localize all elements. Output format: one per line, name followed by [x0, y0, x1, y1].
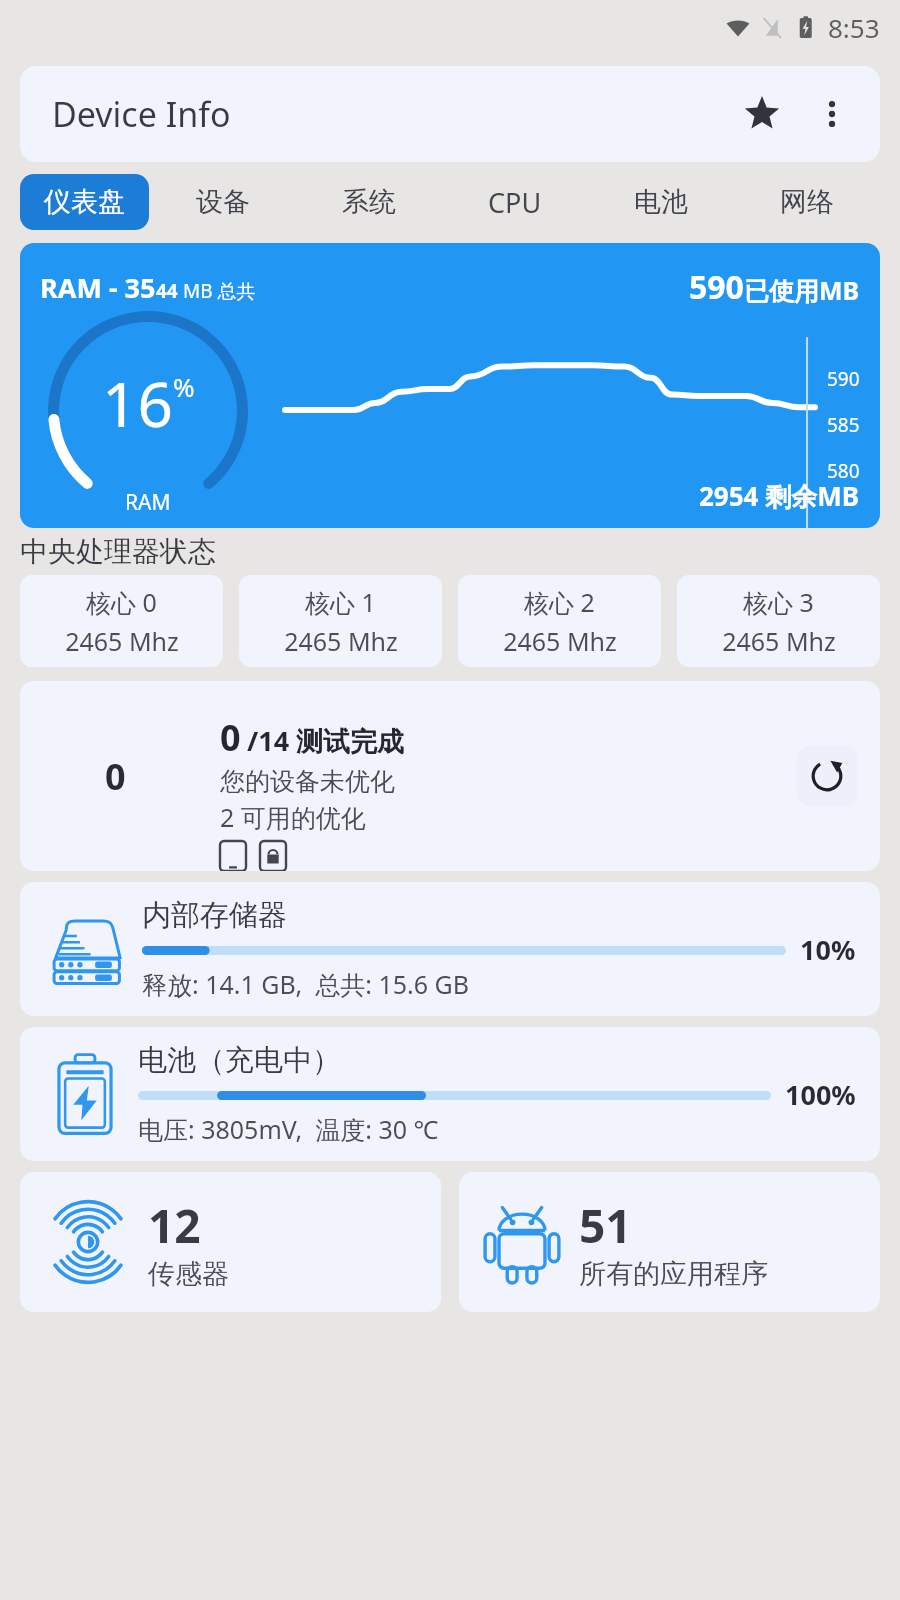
staticText: 585: [827, 412, 860, 438]
staticText: 核心 0: [86, 585, 157, 619]
staticText: /14 测试完成: [247, 722, 405, 759]
staticText: 44: [156, 278, 178, 304]
staticText: 10%: [800, 931, 856, 968]
staticText: 核心 1: [305, 585, 376, 619]
staticText: 51: [579, 1194, 632, 1257]
staticText: 590: [689, 265, 744, 309]
staticText: 2954 剩余MB: [699, 478, 860, 514]
staticText: 12: [148, 1194, 201, 1257]
button[interactable]: 设备: [149, 174, 296, 230]
staticText: 仪表盘: [44, 185, 125, 219]
button[interactable]: 12: [20, 1172, 441, 1312]
button[interactable]: CPU: [442, 174, 588, 230]
staticText: 所有的应用程序: [579, 1257, 768, 1291]
staticText: 内部存储器: [142, 897, 287, 934]
staticText: RAM - 35: [40, 269, 156, 306]
staticText: 2465 Mhz: [503, 624, 617, 658]
button[interactable]: 核心 0: [20, 575, 223, 667]
staticText: 2465 Mhz: [65, 624, 179, 658]
staticText: 已使用MB: [744, 273, 860, 307]
button[interactable]: Refresh: [796, 745, 858, 807]
staticText: 590: [827, 366, 860, 392]
staticText: MB 总共: [183, 278, 256, 304]
button[interactable]: More options: [802, 84, 862, 144]
staticText: CPU: [488, 184, 542, 221]
button[interactable]: 0: [20, 681, 880, 871]
staticText: 中央处理器状态: [20, 534, 216, 569]
staticText: 8:53: [828, 10, 880, 45]
staticText: 释放: 14.1 GB, 总共: 15.6 GB: [142, 967, 469, 1001]
button[interactable]: 核心 2: [458, 575, 661, 667]
button[interactable]: 电池（充电中）: [20, 1027, 880, 1161]
staticText: 核心 3: [743, 585, 814, 619]
staticText: 核心 2: [524, 585, 595, 619]
staticText: 您的设备未优化: [220, 766, 395, 797]
staticText: 100%: [785, 1076, 856, 1113]
staticText: 0: [220, 713, 241, 762]
staticText: 网络: [780, 185, 834, 219]
staticText: 电池（充电中）: [138, 1042, 341, 1079]
staticText: 电池: [634, 185, 688, 219]
staticText: 580: [827, 458, 860, 484]
staticText: 传感器: [148, 1257, 229, 1291]
staticText: Device Info: [52, 91, 231, 137]
button[interactable]: 电池: [588, 174, 734, 230]
staticText: 0: [105, 752, 126, 801]
button[interactable]: 核心 3: [677, 575, 880, 667]
button[interactable]: 系统: [296, 174, 442, 230]
staticText: 16: [102, 361, 173, 445]
button[interactable]: Favorite: [732, 84, 792, 144]
button[interactable]: 核心 1: [239, 575, 442, 667]
button[interactable]: 网络: [734, 174, 880, 230]
button[interactable]: 仪表盘: [20, 174, 149, 230]
staticText: 系统: [342, 185, 396, 219]
button[interactable]: 内部存储器: [20, 882, 880, 1016]
staticText: RAM: [125, 488, 171, 517]
staticText: 2 可用的优化: [220, 800, 366, 834]
staticText: 设备: [196, 185, 250, 219]
button[interactable]: 51: [459, 1172, 880, 1312]
button[interactable]: RAM - 35: [20, 243, 880, 528]
staticText: 电压: 3805mV, 温度: 30 ℃: [138, 1112, 439, 1146]
staticText: %: [173, 369, 195, 404]
staticText: 2465 Mhz: [284, 624, 398, 658]
staticText: 2465 Mhz: [722, 624, 836, 658]
